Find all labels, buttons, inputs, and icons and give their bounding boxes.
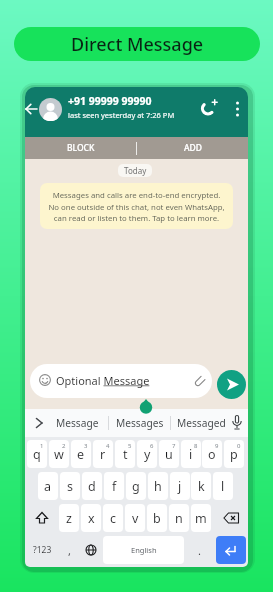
button[interactable]: . (187, 536, 212, 564)
button[interactable]: u (159, 440, 179, 468)
staticText: 2 (62, 442, 66, 450)
button[interactable]: Messaged (173, 409, 230, 437)
button[interactable]: c (103, 504, 123, 532)
staticText: i (189, 446, 193, 463)
staticText: Message (56, 416, 99, 430)
staticText: Today (124, 165, 147, 176)
staticText: j (178, 478, 182, 495)
button[interactable]: y (137, 440, 157, 468)
staticText: v (132, 510, 139, 527)
staticText: m (195, 510, 207, 527)
staticText: s (67, 478, 73, 495)
staticText: Messages (116, 416, 164, 430)
button[interactable] (231, 100, 244, 118)
button[interactable]: x (81, 504, 101, 532)
button[interactable]: Message (49, 409, 106, 437)
staticText: r (100, 446, 106, 463)
staticText: Direct Message (71, 32, 204, 57)
staticText: English (131, 545, 157, 555)
staticText: t (123, 446, 128, 463)
staticText: e (77, 446, 85, 463)
staticText: d (88, 478, 96, 495)
staticText: q (33, 446, 41, 463)
staticText: n (175, 510, 183, 527)
staticText: b (153, 510, 161, 527)
button[interactable]: h (148, 472, 168, 500)
staticText: Messages and calls are end-to-end encryp… (48, 190, 225, 223)
button[interactable]: BLOCK (25, 137, 136, 159)
staticText: ?123 (33, 544, 52, 556)
button[interactable]: e (71, 440, 91, 468)
button[interactable] (81, 536, 101, 564)
button[interactable]: r (93, 440, 113, 468)
button[interactable]: s (60, 472, 80, 500)
staticText: 1 (40, 442, 44, 450)
staticText: , (68, 543, 71, 558)
button[interactable] (216, 536, 246, 564)
staticText: f (112, 478, 117, 495)
button[interactable]: a (38, 472, 58, 500)
button[interactable]: o (202, 440, 222, 468)
button[interactable]: z (59, 504, 79, 532)
staticText: a (44, 478, 52, 495)
staticText: 8 (194, 442, 198, 450)
button[interactable]: Messages and calls are end-to-end encryp… (40, 183, 233, 229)
button[interactable]: ?123 (27, 536, 57, 564)
staticText: l (221, 478, 225, 495)
staticText: +91 99999 99990 (68, 94, 152, 108)
staticText: 0 (237, 442, 241, 450)
button[interactable]: l (213, 472, 233, 500)
staticText: u (165, 446, 173, 463)
button[interactable]: k (191, 472, 211, 500)
button[interactable]: m (191, 504, 211, 532)
button[interactable] (217, 370, 246, 399)
button[interactable]: g (126, 472, 146, 500)
button[interactable]: j (170, 472, 190, 500)
button[interactable]: i (181, 440, 201, 468)
staticText: 4 (106, 442, 110, 450)
staticText: Messaged (177, 416, 226, 430)
staticText: BLOCK (67, 142, 95, 154)
staticText: . (198, 543, 201, 558)
button[interactable]: n (169, 504, 189, 532)
staticText: 7 (172, 442, 176, 450)
staticText: k (198, 478, 205, 495)
button[interactable]: q (27, 440, 47, 468)
button[interactable] (27, 504, 57, 532)
button[interactable]: , (59, 536, 79, 564)
button[interactable]: t (115, 440, 135, 468)
button[interactable]: Optional Message (30, 364, 212, 398)
staticText: 5 (128, 442, 132, 450)
staticText: 3 (84, 442, 88, 450)
staticText: p (230, 446, 238, 463)
staticText: g (132, 478, 140, 495)
staticText: last seen yesterday at 7:26 PM (68, 110, 175, 120)
staticText: y (144, 446, 151, 463)
staticText: w (54, 446, 64, 463)
staticText: ADD (184, 142, 202, 154)
staticText: o (208, 446, 216, 463)
button[interactable]: ADD (137, 137, 248, 159)
staticText: x (88, 510, 95, 527)
button[interactable]: v (125, 504, 145, 532)
button[interactable] (201, 99, 219, 117)
staticText: 9 (215, 442, 219, 450)
button[interactable]: p (224, 440, 244, 468)
staticText: z (66, 510, 72, 527)
staticText: h (154, 478, 162, 495)
button[interactable]: f (104, 472, 124, 500)
button[interactable]: Messages (111, 409, 168, 437)
staticText: Optional Message (56, 373, 150, 388)
button[interactable]: Direct Message (14, 27, 260, 61)
button[interactable]: d (82, 472, 102, 500)
button[interactable]: English (103, 536, 184, 564)
staticText: 6 (150, 442, 154, 450)
button[interactable]: w (49, 440, 69, 468)
button[interactable] (216, 504, 246, 532)
staticText: c (110, 510, 117, 527)
button[interactable]: b (147, 504, 167, 532)
